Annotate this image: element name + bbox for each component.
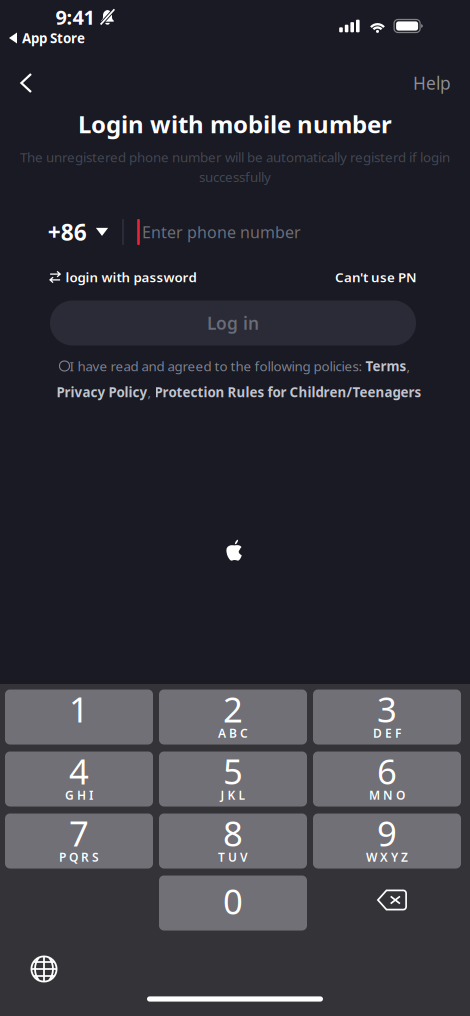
- staticText: I have read and agreed to the following …: [69, 357, 365, 375]
- button[interactable]: 7: [5, 813, 153, 868]
- staticText: App Store: [22, 29, 85, 47]
- button[interactable]: login with password: [49, 263, 196, 291]
- button[interactable]: Log in: [50, 300, 416, 345]
- staticText: D E F: [373, 725, 401, 741]
- staticText: Log in: [207, 311, 259, 334]
- staticText: 6: [377, 748, 397, 794]
- staticText: 7: [69, 810, 89, 856]
- button[interactable]: 8: [159, 813, 307, 868]
- button[interactable]: Privacy Policy: [56, 383, 147, 401]
- staticText: 3: [377, 686, 397, 732]
- button[interactable]: Protection Rules for Children/Teenagers: [154, 383, 421, 401]
- staticText: T U V: [218, 849, 248, 865]
- button[interactable]: Help: [402, 63, 462, 103]
- button[interactable]: Agree to policies: [59, 361, 69, 371]
- staticText: Help: [413, 71, 451, 94]
- staticText: login with password: [65, 268, 196, 286]
- staticText: J K L: [220, 787, 245, 803]
- button[interactable]: 1: [5, 689, 153, 744]
- staticText: Login with mobile number: [78, 108, 392, 140]
- button[interactable]: 9: [313, 813, 461, 868]
- staticText: Privacy Policy: [56, 383, 147, 401]
- button[interactable]: Change keyboard: [17, 942, 71, 996]
- staticText: W X Y Z: [366, 849, 408, 865]
- staticText: P Q R S: [59, 849, 99, 865]
- button[interactable]: 2: [159, 689, 307, 744]
- button[interactable]: Country code +86: [42, 211, 114, 253]
- button[interactable]: Enter phone number: [142, 211, 422, 253]
- staticText: Terms: [365, 357, 406, 375]
- staticText: 1: [69, 686, 89, 732]
- staticText: 9:41: [55, 4, 94, 30]
- staticText: 2: [223, 686, 243, 732]
- staticText: M N O: [369, 787, 405, 803]
- staticText: Protection Rules for Children/Teenagers: [154, 383, 421, 401]
- staticText: 5: [223, 748, 243, 794]
- button[interactable]: 0: [159, 875, 307, 930]
- staticText: ,: [147, 383, 154, 401]
- button[interactable]: 5: [159, 751, 307, 806]
- staticText: Enter phone number: [142, 221, 301, 243]
- staticText: ,: [406, 357, 410, 375]
- button[interactable]: 4: [5, 751, 153, 806]
- staticText: Can't use PN: [335, 268, 417, 286]
- staticText: G H I: [65, 787, 93, 803]
- button[interactable]: 6: [313, 751, 461, 806]
- staticText: 4: [69, 748, 89, 794]
- staticText: A B C: [218, 725, 248, 741]
- button[interactable]: Terms: [365, 357, 406, 375]
- staticText: The unregistered phone number will be au…: [20, 148, 450, 166]
- staticText: 9: [377, 810, 397, 856]
- staticText: 8: [223, 810, 243, 856]
- staticText: successfully: [199, 168, 271, 186]
- button[interactable]: Can't use PN: [335, 263, 417, 291]
- button[interactable]: Delete: [345, 873, 439, 926]
- staticText: +86: [48, 217, 87, 247]
- button[interactable]: Back: [4, 61, 48, 105]
- button[interactable]: 3: [313, 689, 461, 744]
- staticText: 0: [223, 878, 243, 924]
